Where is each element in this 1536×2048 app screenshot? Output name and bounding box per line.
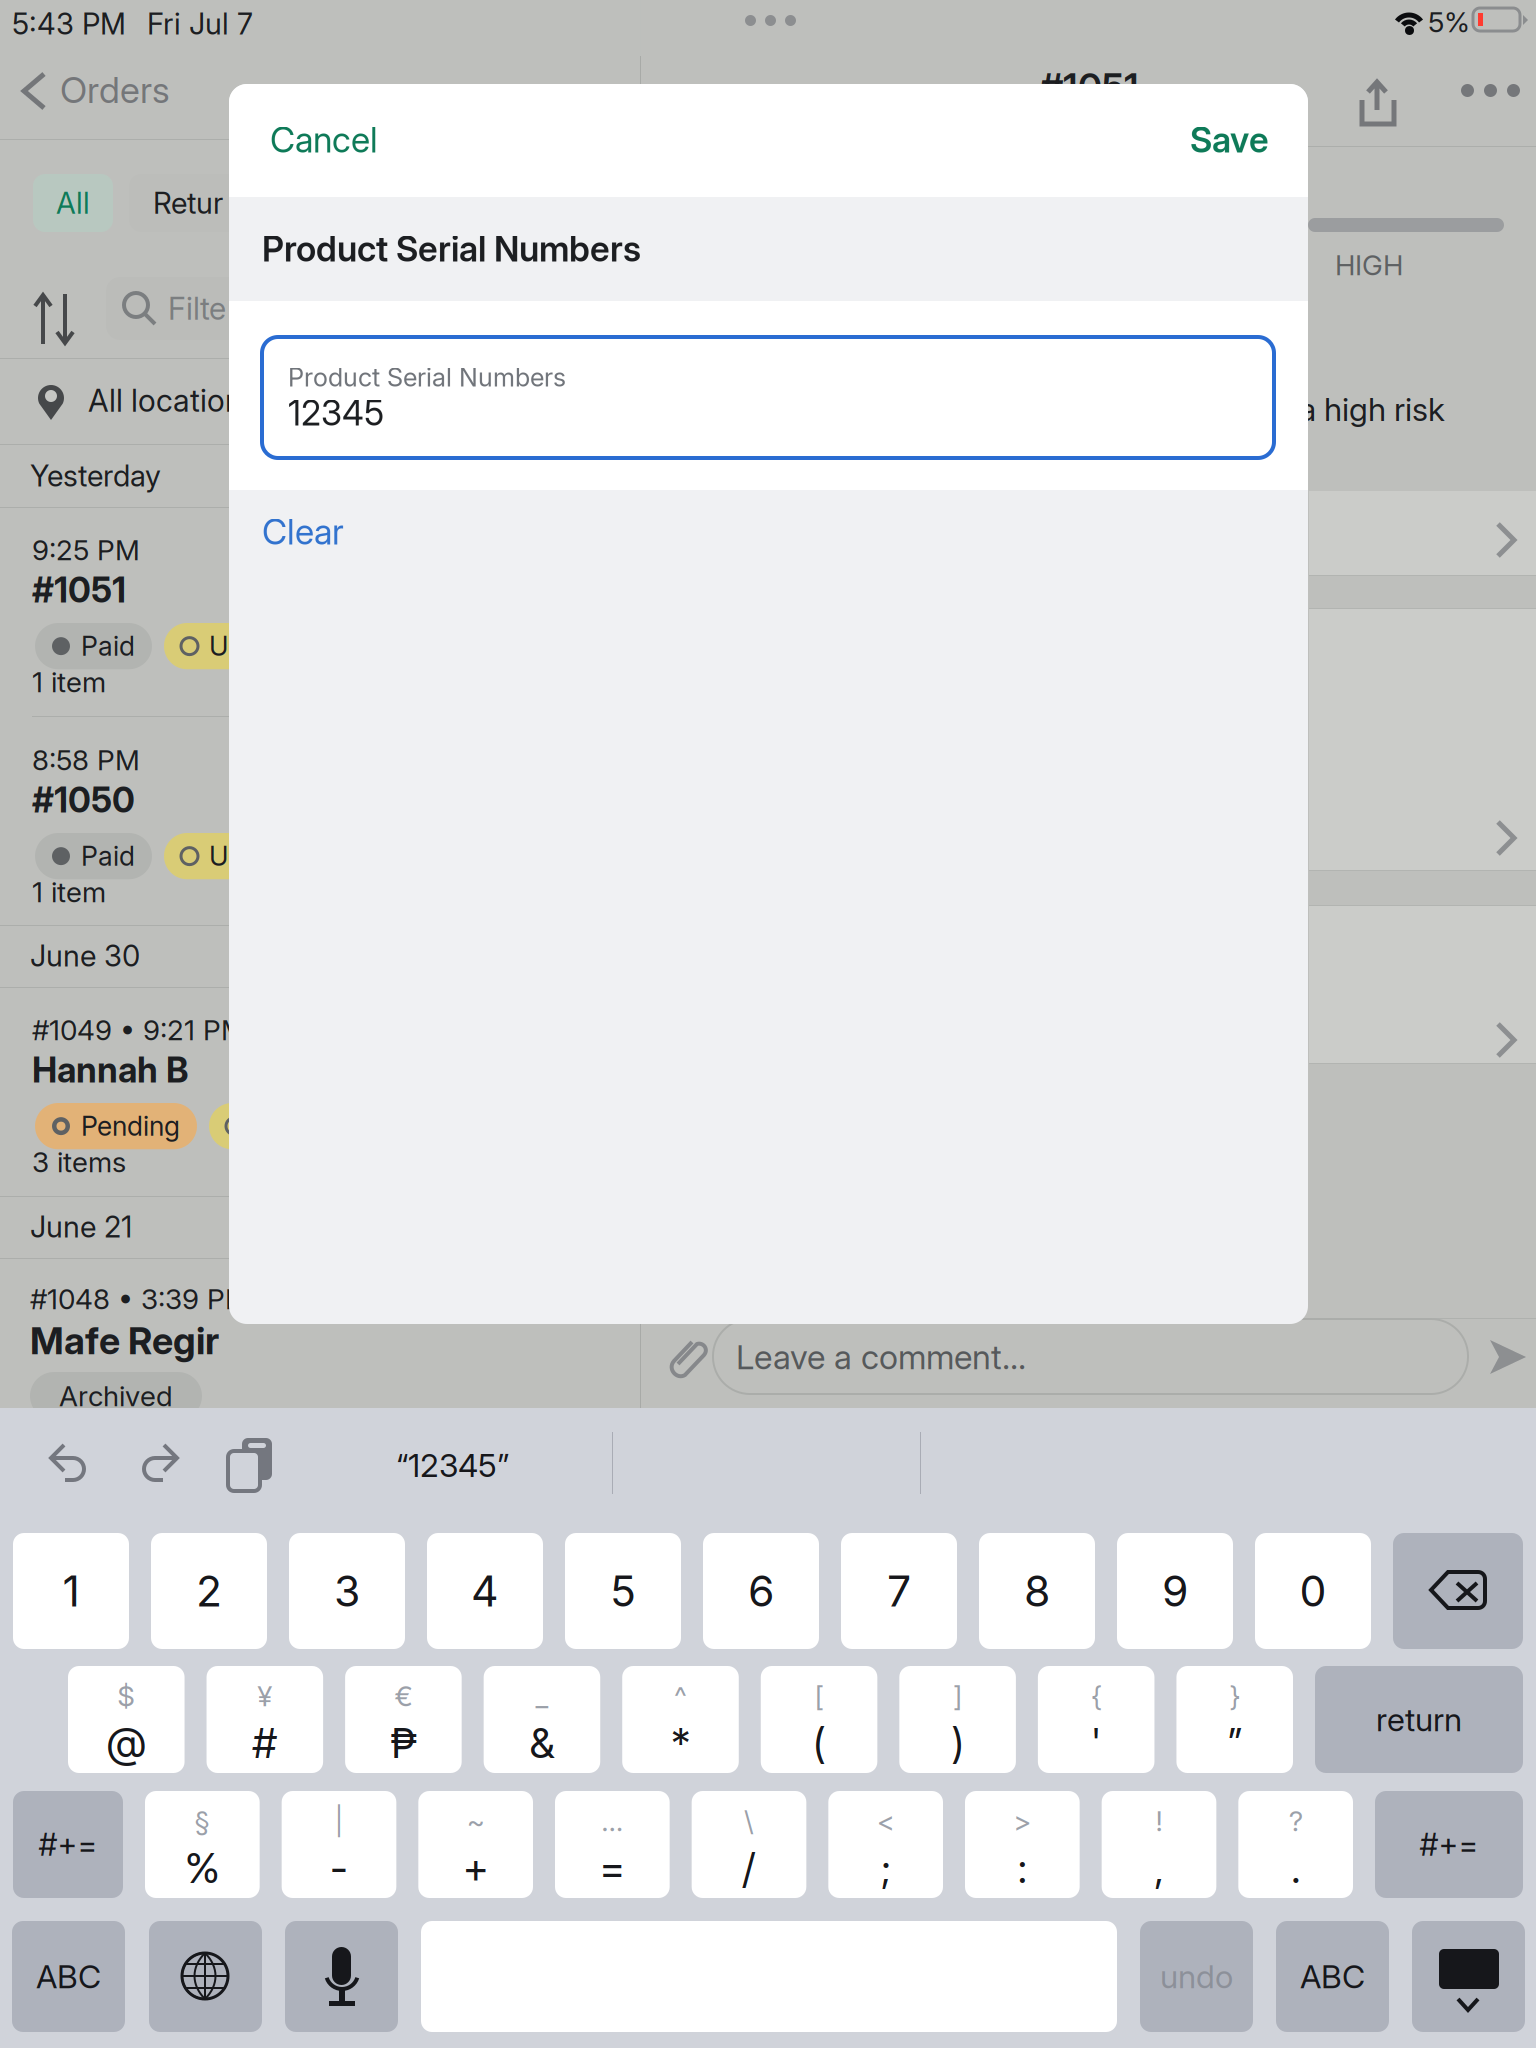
staticText: ?: [1289, 1804, 1303, 1838]
button[interactable]: Retur: [129, 174, 313, 232]
button[interactable]: 6: [703, 1533, 819, 1649]
staticText: 6: [748, 1565, 774, 1617]
staticText: Retur: [153, 185, 223, 221]
staticText: June 30: [30, 938, 140, 973]
button[interactable]: 1: [13, 1533, 129, 1649]
staticText: Archived: [59, 1379, 173, 1413]
button[interactable]: return: [1315, 1666, 1523, 1773]
button[interactable]: 7: [841, 1533, 957, 1649]
staticText: €: [394, 1679, 412, 1713]
button[interactable]: Hide keyboard: [1412, 1921, 1525, 2032]
button[interactable]: ]: [899, 1666, 1016, 1773]
staticText: ”: [1228, 1718, 1242, 1768]
button[interactable]: _: [484, 1666, 600, 1773]
button[interactable]: Next keyboard: [149, 1921, 262, 2032]
staticText: 1: [62, 1565, 79, 1617]
button[interactable]: $: [68, 1666, 185, 1773]
button[interactable]: All: [33, 174, 113, 232]
button[interactable]: ?: [1238, 1791, 1353, 1898]
staticText: #+=: [38, 1826, 97, 1863]
staticText: ;: [881, 1843, 890, 1893]
staticText: 1 item: [32, 665, 106, 699]
button[interactable]: Paste: [228, 1438, 274, 1492]
staticText: 7: [887, 1565, 911, 1617]
staticText: Leave a comment...: [736, 1337, 1026, 1377]
button[interactable]: {: [1038, 1666, 1154, 1773]
button[interactable]: ¥: [207, 1666, 323, 1773]
button[interactable]: Send: [1486, 1335, 1530, 1379]
button[interactable]: Cancel: [253, 108, 450, 172]
button[interactable]: 9: [1117, 1533, 1233, 1649]
button[interactable]: Save: [1089, 108, 1284, 172]
button[interactable]: Dictate: [285, 1921, 398, 2032]
staticText: Hannah B: [32, 1049, 189, 1091]
staticText: 4: [471, 1565, 499, 1617]
button[interactable]: ^: [622, 1666, 739, 1773]
button[interactable]: 4: [427, 1533, 543, 1649]
staticText: 8:58 PM: [32, 743, 140, 777]
button[interactable]: 0: [1255, 1533, 1371, 1649]
button[interactable]: >: [965, 1791, 1080, 1898]
button[interactable]: ABC: [1276, 1921, 1389, 2032]
staticText: 3: [334, 1565, 360, 1617]
staticText: 1 item: [32, 875, 106, 909]
button[interactable]: undo: [1140, 1921, 1253, 2032]
staticText: ,: [1154, 1843, 1163, 1893]
button[interactable]: Sort: [34, 292, 54, 346]
button[interactable]: Delete: [1393, 1533, 1523, 1649]
button[interactable]: \: [692, 1791, 806, 1898]
button[interactable]: 8: [979, 1533, 1095, 1649]
button[interactable]: Clear: [253, 501, 462, 563]
button[interactable]: [: [761, 1666, 877, 1773]
button[interactable]: §: [145, 1791, 260, 1898]
button[interactable]: €: [345, 1666, 462, 1773]
staticText: ~: [467, 1804, 485, 1838]
button[interactable]: #+=: [13, 1791, 123, 1898]
button[interactable]: 3: [289, 1533, 405, 1649]
button[interactable]: Undo: [49, 1444, 91, 1486]
staticText: Product Serial Numbers: [288, 362, 566, 393]
staticText: …: [601, 1804, 623, 1838]
staticText: #: [252, 1718, 277, 1768]
staticText: return: [1376, 1700, 1462, 1739]
staticText: -: [330, 1843, 348, 1893]
staticText: 3 items: [32, 1145, 126, 1179]
staticText: June 21: [30, 1209, 132, 1244]
staticText: All: [56, 185, 90, 221]
staticText: §: [194, 1804, 210, 1838]
staticText: Cancel: [270, 119, 378, 161]
staticText: $: [117, 1679, 135, 1713]
staticText: 9: [1162, 1565, 1188, 1617]
button[interactable]: More: [1461, 84, 1520, 97]
staticText: #1051: [32, 569, 126, 611]
button[interactable]: }: [1176, 1666, 1293, 1773]
staticText: Paid: [81, 840, 135, 872]
button[interactable]: 5: [565, 1533, 681, 1649]
staticText: Yesterday: [30, 458, 161, 493]
button[interactable]: ~: [418, 1791, 533, 1898]
staticText: }: [1229, 1679, 1240, 1713]
button[interactable]: Attach: [666, 1336, 710, 1384]
staticText: #1051: [1040, 64, 1139, 109]
staticText: !: [1155, 1804, 1162, 1838]
staticText: Mafe Regir: [30, 1318, 219, 1363]
staticText: Save: [1190, 119, 1269, 161]
button[interactable]: !: [1102, 1791, 1216, 1898]
button[interactable]: Redo: [139, 1444, 181, 1486]
staticText: %: [185, 1843, 220, 1893]
button[interactable]: 2: [151, 1533, 267, 1649]
button[interactable]: …: [555, 1791, 670, 1898]
staticText: 8: [1024, 1565, 1050, 1617]
staticText: ₱: [390, 1718, 416, 1768]
button[interactable]: |: [282, 1791, 396, 1898]
staticText: Fri Jul 7: [147, 6, 253, 41]
button[interactable]: #+=: [1375, 1791, 1523, 1898]
button[interactable]: <: [828, 1791, 943, 1898]
staticText: \: [744, 1804, 754, 1838]
staticText: 5: [610, 1565, 636, 1617]
button[interactable]: Share: [1358, 80, 1398, 126]
button[interactable]: ABC: [12, 1921, 125, 2032]
staticText: @: [106, 1718, 146, 1768]
staticText: HIGH: [1335, 248, 1403, 282]
